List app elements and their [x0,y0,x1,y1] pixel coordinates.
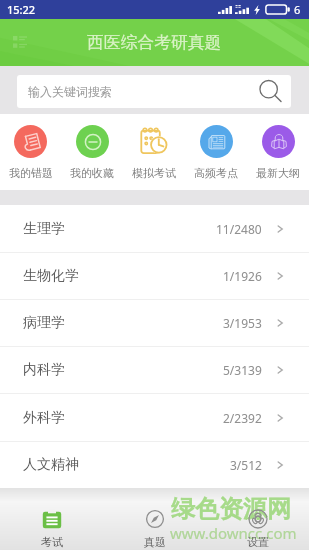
button[interactable]: 考试 [0,509,103,549]
staticText: www.downcc.com [170,523,297,543]
staticText: 6 [294,2,301,17]
staticText: 病理学 [23,314,65,332]
staticText: 真题 [144,535,166,549]
staticText: 5/3139 [223,362,262,378]
staticText: 3/1953 [223,315,262,331]
staticText: 生物化学 [23,267,79,285]
staticText: 人文精神 [23,456,79,474]
staticText: 最新大纲 [256,166,300,180]
staticText: 设置 [247,535,269,549]
button[interactable]: 生理学 [0,205,309,252]
button[interactable]: 我的收藏 [61,125,123,180]
button[interactable]: 设置 [206,509,309,549]
button[interactable]: 人文精神 [0,442,309,488]
staticText: 绿色资源网 [171,494,291,524]
staticText: 生理学 [23,220,65,238]
button[interactable]: 模拟考试 [123,125,185,180]
staticText: 1/1926 [223,268,262,284]
button[interactable]: 病理学 [0,300,309,346]
button[interactable]: 输入关键词搜索 [17,75,291,108]
staticText: 11/2480 [216,221,262,237]
button[interactable]: 生物化学 [0,253,309,299]
staticText: 模拟考试 [132,166,176,180]
staticText: 我的收藏 [70,166,114,180]
staticText: 15:22 [7,2,36,17]
staticText: 外科学 [23,409,65,427]
staticText: 输入关键词搜索 [28,84,112,99]
button[interactable]: 外科学 [0,394,309,441]
staticText: 2/2392 [223,410,262,426]
button[interactable]: 我的错题 [0,125,61,180]
button[interactable]: 内科学 [0,347,309,393]
staticText: 内科学 [23,361,65,379]
button[interactable]: 高频考点 [185,125,247,180]
staticText: 高频考点 [194,166,238,180]
button[interactable]: 真题 [103,509,206,549]
staticText: 考试 [41,535,63,549]
staticText: 西医综合考研真题 [87,32,222,53]
staticText: 我的错题 [9,166,53,180]
staticText: 3/512 [230,457,262,473]
button[interactable]: 最新大纲 [247,125,309,180]
